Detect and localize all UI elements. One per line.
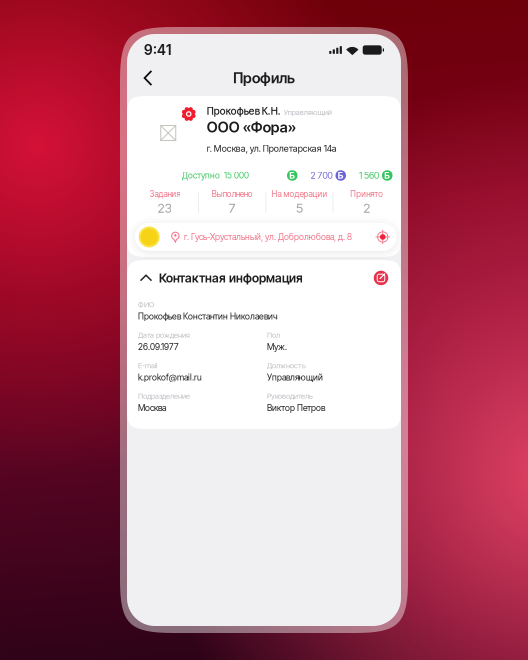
staticText: 2 bbox=[363, 200, 370, 216]
staticText: 7 bbox=[229, 200, 236, 216]
staticText: Прокофьев К.Н. bbox=[207, 105, 281, 117]
staticText: Б bbox=[338, 170, 344, 181]
staticText: Принято bbox=[350, 189, 383, 199]
staticText: Должность bbox=[267, 361, 306, 370]
staticText: Задания bbox=[149, 189, 180, 199]
staticText: Контактная информация bbox=[159, 270, 303, 285]
button[interactable]: Свернуть bbox=[135, 267, 157, 289]
staticText: ООО «Фора» bbox=[207, 118, 296, 136]
staticText: Профиль bbox=[233, 69, 295, 87]
staticText: Выполнено bbox=[212, 189, 253, 199]
staticText: Муж. bbox=[267, 341, 287, 352]
staticText: ФИО bbox=[138, 300, 154, 309]
staticText: 9:41 bbox=[144, 41, 171, 58]
staticText: г. Москва, ул. Пролетарская 14а bbox=[207, 143, 337, 154]
staticText: 23 bbox=[157, 200, 172, 216]
staticText: Москва bbox=[138, 403, 166, 413]
staticText: Б bbox=[384, 170, 390, 181]
staticText: k.prokof@mail.ru bbox=[138, 372, 202, 382]
staticText: Управляющий bbox=[267, 372, 323, 382]
staticText: 2 700 bbox=[310, 170, 332, 181]
staticText: На модерации bbox=[271, 189, 327, 199]
staticText: 5 bbox=[296, 200, 303, 216]
staticText: Пол bbox=[267, 330, 280, 339]
staticText: 1 560 bbox=[359, 170, 379, 181]
staticText: Руководитель bbox=[267, 391, 313, 400]
button[interactable]: Назад bbox=[134, 64, 162, 92]
staticText: Дата рождения bbox=[138, 330, 190, 339]
staticText: Прокофьев Константин Николаевич bbox=[138, 311, 278, 321]
button[interactable]: Редактировать bbox=[370, 267, 392, 289]
staticText: Управляющий bbox=[284, 108, 332, 117]
staticText: Виктор Петров bbox=[267, 403, 325, 413]
staticText: E-mail bbox=[138, 361, 157, 370]
image bbox=[160, 125, 176, 141]
staticText: Б bbox=[289, 170, 295, 181]
button[interactable]: г. Гусь-Хрустальный, ул. Добролюбова, д.… bbox=[135, 223, 397, 251]
staticText: 26.09.1977 bbox=[138, 341, 178, 352]
staticText: Подразделение bbox=[138, 391, 190, 400]
staticText: г. Гусь-Хрустальный, ул. Добролюбова, д.… bbox=[184, 232, 352, 242]
staticText: Доступно 15 000 bbox=[182, 170, 249, 181]
